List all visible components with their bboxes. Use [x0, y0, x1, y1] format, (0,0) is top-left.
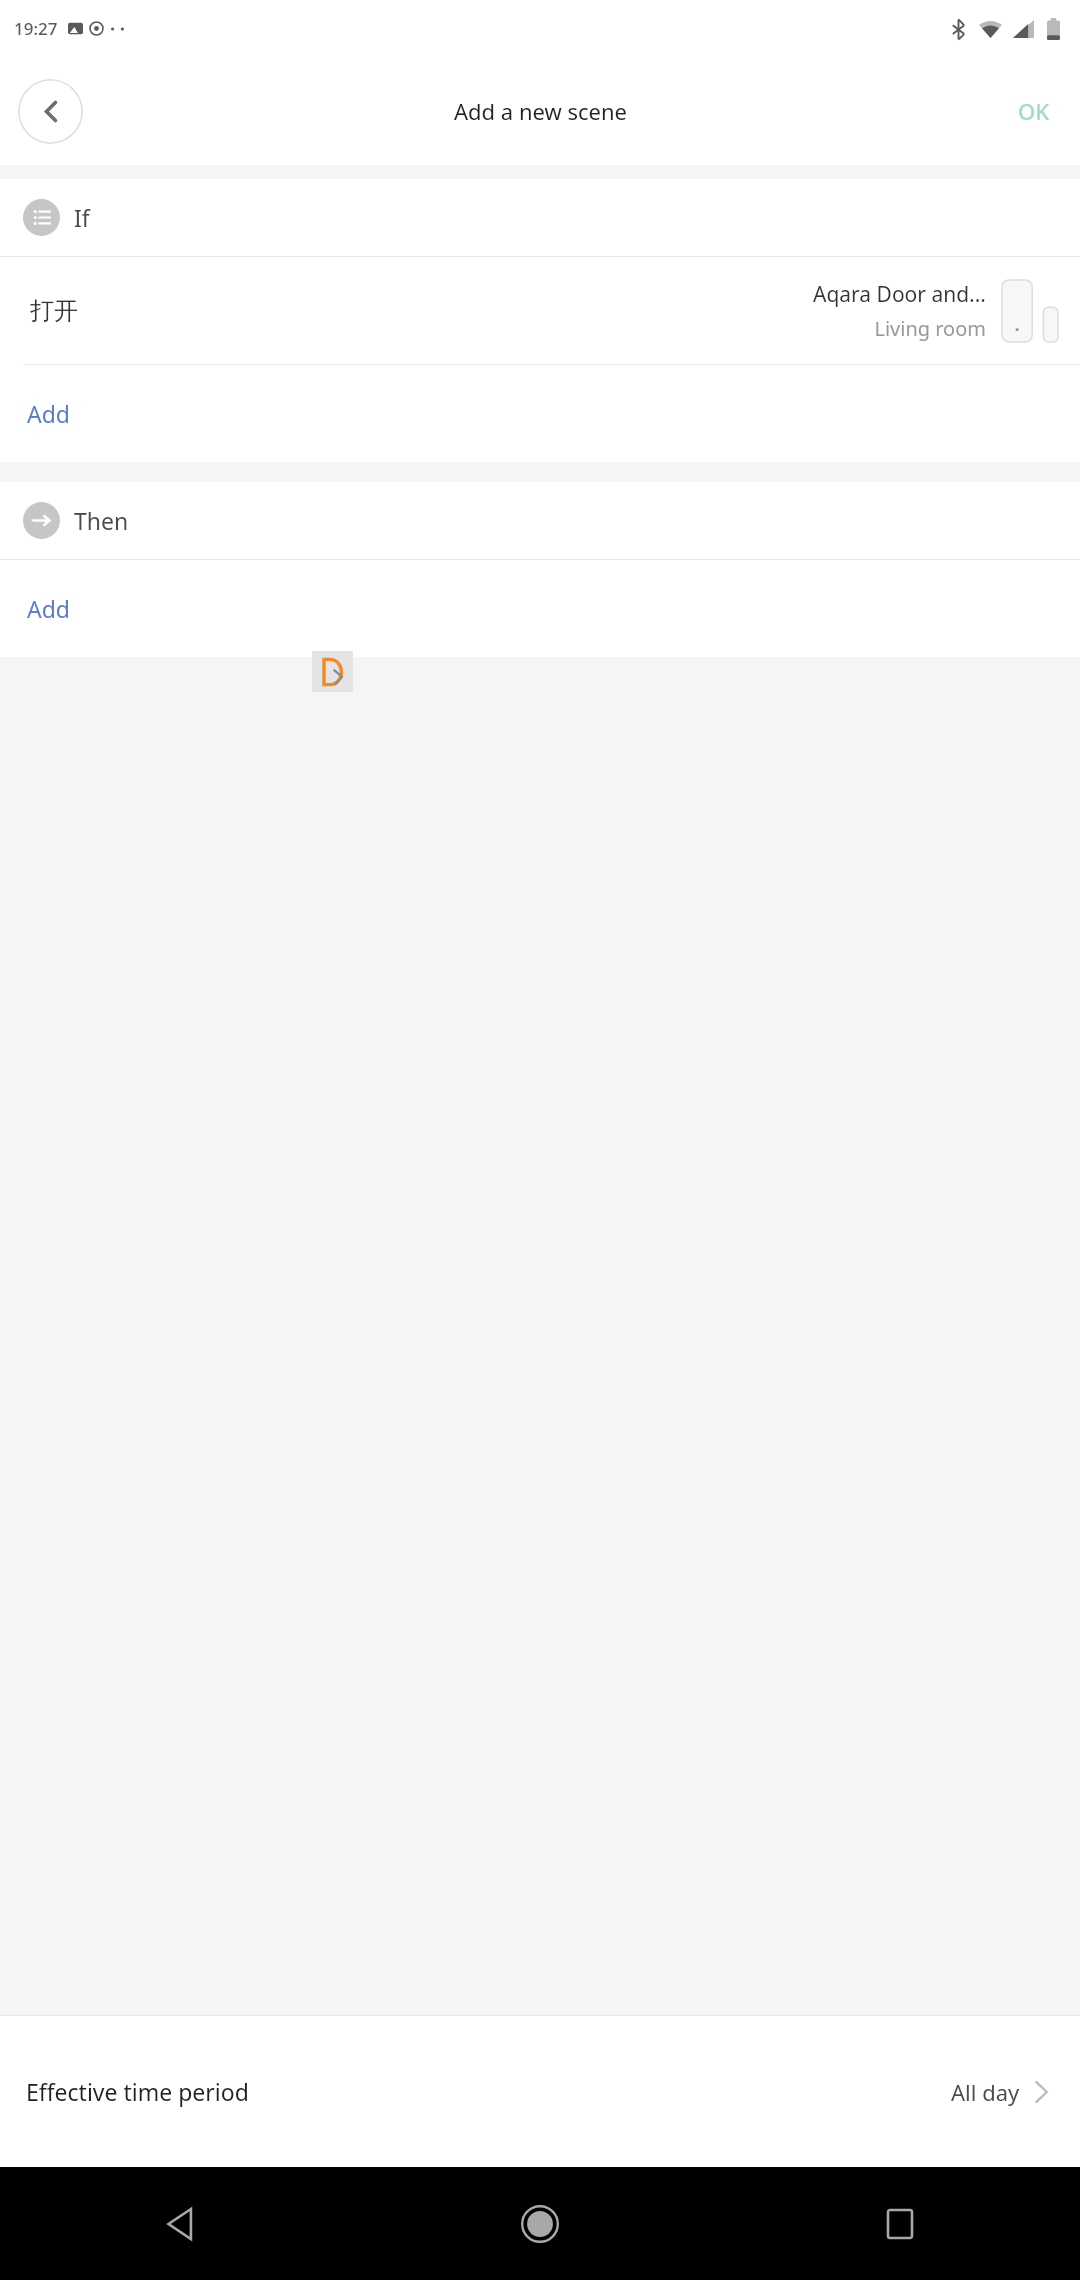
staticText: 打开 — [30, 296, 78, 326]
staticText: Living room — [874, 315, 986, 342]
staticText: Then — [74, 505, 129, 536]
button[interactable]: Overlay assistant — [312, 651, 353, 692]
staticText: Add — [27, 593, 70, 624]
button[interactable]: Recents — [720, 2167, 1080, 2280]
staticText: Effective time period — [26, 2076, 249, 2107]
button[interactable]: Back — [0, 2167, 360, 2280]
staticText: Add a new scene — [454, 96, 627, 126]
button[interactable]: Home — [360, 2167, 720, 2280]
button[interactable]: OK — [996, 84, 1072, 138]
staticText: Add — [27, 398, 70, 429]
button[interactable]: 打开 — [0, 257, 1080, 364]
button[interactable]: If — [0, 179, 1080, 256]
staticText: All day — [951, 2077, 1020, 2107]
button[interactable]: Add — [0, 365, 1080, 462]
staticText: Aqara Door and... — [812, 280, 986, 309]
button[interactable]: Then — [0, 482, 1080, 559]
staticText: If — [74, 202, 90, 233]
button[interactable]: Add — [0, 560, 1080, 657]
button[interactable]: Effective time period — [0, 2016, 1080, 2167]
staticText: OK — [1018, 96, 1050, 126]
button[interactable]: Back — [18, 79, 83, 144]
staticText: 19:27 — [14, 17, 58, 40]
